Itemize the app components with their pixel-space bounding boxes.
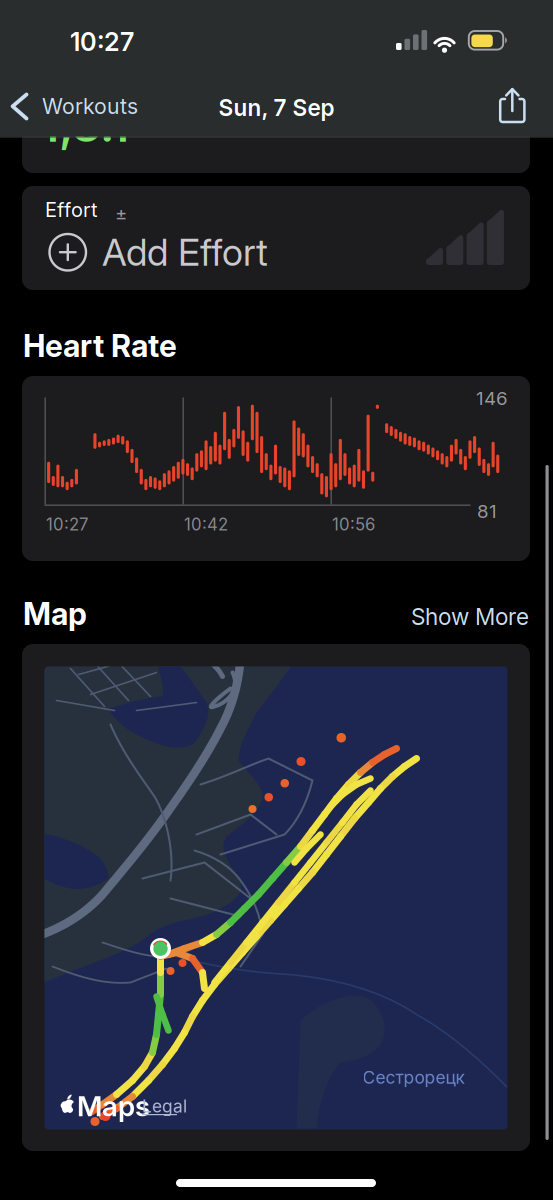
staticText: Map [23,595,87,632]
button[interactable]: Workouts [0,0,553,1200]
staticText: Сестрорецк [362,1067,464,1088]
staticText: Heart Rate [23,327,177,364]
staticText: 81 [477,500,497,522]
button[interactable]: Legal [59,1091,259,1119]
staticText: Effort [45,198,98,222]
staticText: Workouts [42,93,138,119]
staticText: Add Effort [102,230,268,275]
staticText: Maps [77,1089,150,1117]
staticText: 146 [476,387,508,409]
staticText: Sun, 7 Sep [218,94,334,121]
button[interactable] [0,0,553,1200]
button[interactable]: Show More [0,0,553,1200]
staticText: 10:42 [184,514,228,534]
staticText: Legal [142,1096,187,1117]
staticText: 1,3.1 [40,98,129,153]
staticText: 10:27 [46,514,88,534]
staticText: 10:56 [332,514,375,534]
staticText: Show More [411,603,529,630]
staticText: ± [115,202,127,224]
staticText: 10:27 [70,26,134,57]
button[interactable]: Share [0,0,553,1200]
